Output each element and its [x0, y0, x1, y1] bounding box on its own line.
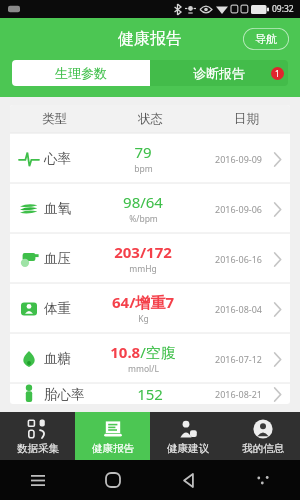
other: 查看详情: [268, 350, 286, 368]
staticText: 血氧: [44, 200, 71, 217]
staticText: 09:32: [272, 3, 294, 15]
button[interactable]: 血压: [10, 234, 290, 283]
staticText: 生理参数: [55, 65, 107, 81]
staticText: mmHg: [129, 263, 157, 275]
other: 查看详情: [268, 300, 286, 318]
staticText: 64/增重7: [112, 292, 174, 312]
staticText: 2016-06-16: [215, 253, 262, 265]
staticText: 血糖: [44, 350, 71, 367]
other: 查看详情: [268, 150, 286, 168]
button[interactable]: 健康报告: [75, 412, 150, 460]
staticText: 2016-08-04: [215, 303, 262, 315]
button[interactable]: Menu: [26, 468, 50, 492]
staticText: 2016-09-06: [215, 203, 262, 215]
button[interactable]: 健康建议: [150, 412, 225, 460]
staticText: 203/172: [114, 242, 172, 262]
staticText: 79: [134, 142, 152, 162]
staticText: 诊断报告: [193, 65, 245, 81]
staticText: 健康建议: [167, 442, 209, 455]
staticText: 体重: [44, 300, 71, 317]
staticText: mmol/L: [128, 363, 159, 375]
staticText: 状态: [138, 111, 163, 127]
button[interactable]: 血氧: [10, 184, 290, 233]
staticText: 2016-09-09: [215, 153, 262, 165]
staticText: 胎心率: [44, 386, 85, 403]
staticText: 健康报告: [92, 442, 134, 455]
staticText: Kg: [138, 313, 149, 325]
staticText: 98/64: [123, 192, 163, 212]
other: 查看详情: [268, 385, 286, 403]
staticText: 类型: [42, 111, 67, 127]
button[interactable]: 体重: [10, 284, 290, 333]
button[interactable]: 诊断报告: [150, 60, 288, 86]
staticText: 2016-07-12: [215, 353, 262, 365]
staticText: 健康报告: [118, 29, 182, 49]
button[interactable]: Recent apps: [251, 468, 275, 492]
staticText: %/bpm: [129, 213, 158, 225]
staticText: 日期: [234, 111, 259, 127]
staticText: 152: [137, 384, 163, 404]
button[interactable]: 血糖: [10, 334, 290, 383]
staticText: 血压: [44, 250, 71, 267]
other: 查看详情: [268, 250, 286, 268]
button[interactable]: Home: [101, 468, 125, 492]
staticText: bpm: [134, 163, 153, 175]
staticText: 2016-08-21: [215, 388, 262, 400]
other: 查看详情: [268, 200, 286, 218]
staticText: 数据采集: [17, 442, 59, 455]
staticText: 10.8/空腹: [110, 342, 176, 362]
button[interactable]: 导航: [242, 27, 290, 51]
staticText: 导航: [255, 32, 277, 46]
staticText: 心率: [44, 150, 71, 167]
staticText: 我的信息: [242, 442, 284, 455]
button[interactable]: 数据采集: [0, 412, 75, 460]
button[interactable]: 我的信息: [225, 412, 300, 460]
staticText: 1: [275, 68, 280, 79]
button[interactable]: 胎心率: [10, 384, 290, 404]
button[interactable]: 生理参数: [12, 60, 150, 86]
button[interactable]: Back: [176, 468, 200, 492]
button[interactable]: 心率: [10, 134, 290, 183]
